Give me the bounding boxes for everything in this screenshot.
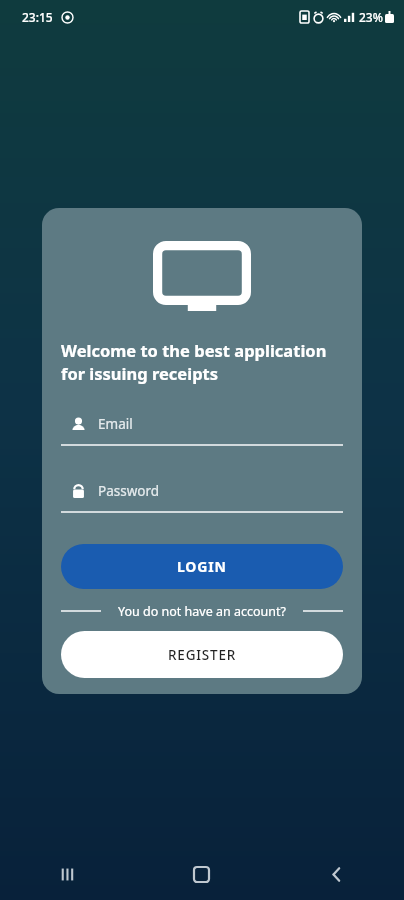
staticText: You do not have an account? bbox=[101, 603, 303, 620]
staticText: Email bbox=[98, 415, 133, 433]
button[interactable]: Back bbox=[269, 848, 404, 900]
staticText: REGISTER bbox=[168, 646, 237, 664]
button[interactable]: LOGIN bbox=[61, 544, 343, 589]
staticText: LOGIN bbox=[177, 557, 227, 576]
button[interactable]: Home bbox=[134, 848, 269, 900]
staticText: Welcome to the best application for issu… bbox=[61, 339, 343, 385]
button[interactable]: Email bbox=[61, 411, 343, 446]
staticText: 23% bbox=[359, 9, 383, 25]
button[interactable]: Recent apps bbox=[0, 848, 134, 900]
button[interactable]: Password bbox=[61, 478, 343, 513]
button[interactable]: REGISTER bbox=[61, 631, 343, 678]
staticText: 23:15 bbox=[22, 9, 53, 25]
staticText: Password bbox=[98, 482, 160, 500]
